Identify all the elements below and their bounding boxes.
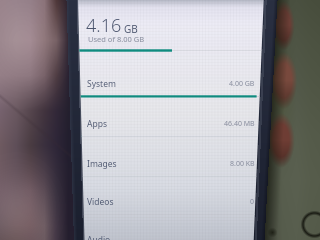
staticText: 8.00 KB (230, 159, 255, 169)
staticText: 4.16 (86, 13, 122, 38)
button[interactable]: System (78, 66, 264, 106)
staticText: Audio (87, 234, 111, 240)
staticText: Images (87, 158, 117, 170)
staticText: 4.00 GB (229, 79, 255, 89)
button[interactable]: Images (78, 146, 264, 186)
staticText: GB (124, 22, 138, 36)
button[interactable]: Videos (78, 184, 264, 224)
staticText: System (87, 78, 116, 90)
button[interactable]: Apps (78, 106, 264, 146)
staticText: Used of 8.00 GB (88, 34, 145, 44)
staticText: 0 (250, 197, 255, 207)
staticText: 46.40 MB (224, 119, 255, 129)
staticText: Apps (87, 118, 107, 130)
button[interactable]: Audio (78, 222, 264, 240)
staticText: Videos (87, 196, 114, 208)
